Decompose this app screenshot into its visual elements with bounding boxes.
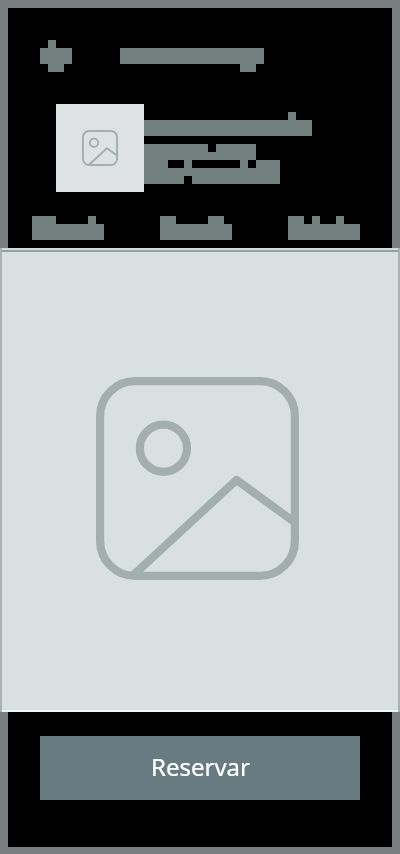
button[interactable]: Reservar xyxy=(40,736,360,800)
staticText: Reservar xyxy=(151,750,250,783)
